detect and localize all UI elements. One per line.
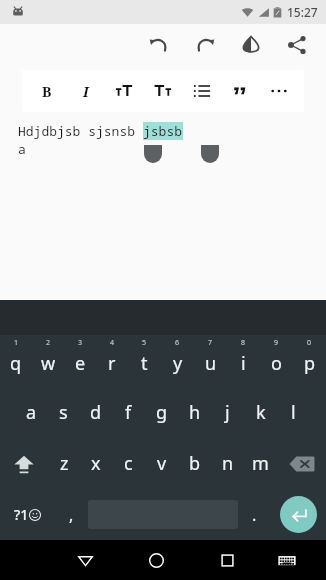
button[interactable]: . bbox=[238, 489, 271, 540]
button[interactable]: I bbox=[69, 70, 103, 112]
button[interactable]: a bbox=[15, 387, 47, 438]
button[interactable]: b bbox=[178, 438, 211, 489]
staticText: 7 bbox=[208, 338, 213, 348]
staticText: b bbox=[189, 451, 201, 476]
staticText: 8 bbox=[241, 338, 246, 348]
button[interactable]: l bbox=[277, 387, 310, 438]
staticText: o bbox=[271, 351, 282, 376]
staticText: 6 bbox=[175, 338, 180, 348]
staticText: q bbox=[10, 351, 22, 376]
staticText: B bbox=[42, 82, 52, 101]
button[interactable]: Symbols bbox=[0, 489, 55, 540]
button[interactable]: 6 bbox=[161, 335, 194, 387]
button[interactable]: Quote bbox=[223, 70, 257, 112]
staticText: n bbox=[222, 451, 234, 476]
button[interactable]: x bbox=[80, 438, 112, 489]
staticText: , bbox=[69, 504, 74, 526]
staticText: 9 bbox=[274, 338, 279, 348]
button[interactable]: d bbox=[79, 387, 112, 438]
staticText: f bbox=[125, 400, 132, 425]
staticText: x bbox=[91, 451, 101, 476]
button[interactable]: Redo bbox=[182, 24, 228, 66]
button[interactable]: List bbox=[185, 70, 219, 112]
staticText: t bbox=[141, 351, 148, 376]
staticText: 4 bbox=[110, 338, 115, 348]
staticText: p bbox=[304, 351, 316, 376]
staticText: a bbox=[18, 140, 26, 158]
button[interactable]: j bbox=[211, 387, 244, 438]
button[interactable]: Undo bbox=[136, 24, 182, 66]
button[interactable]: 0 bbox=[293, 335, 326, 387]
staticText: e bbox=[75, 351, 86, 376]
button[interactable]: Home bbox=[134, 540, 178, 580]
staticText: k bbox=[256, 400, 266, 425]
staticText: 0 bbox=[307, 338, 312, 348]
staticText: l bbox=[291, 400, 296, 425]
button[interactable]: 4 bbox=[96, 335, 128, 387]
staticText: h bbox=[189, 400, 201, 425]
staticText: g bbox=[156, 400, 168, 425]
button[interactable]: 2 bbox=[32, 335, 64, 387]
staticText: 3 bbox=[78, 338, 83, 348]
button[interactable]: 9 bbox=[260, 335, 293, 387]
staticText: ?1 bbox=[14, 505, 29, 524]
staticText: r bbox=[108, 351, 116, 376]
staticText: c bbox=[124, 451, 133, 476]
staticText: 15:27 bbox=[287, 4, 318, 20]
button[interactable]: Back bbox=[63, 540, 107, 580]
button[interactable]: B bbox=[30, 70, 64, 112]
button[interactable]: z bbox=[48, 438, 80, 489]
button[interactable]: m bbox=[244, 438, 277, 489]
staticText: z bbox=[60, 451, 69, 476]
button[interactable]: s bbox=[47, 387, 79, 438]
button[interactable]: Switch keyboard bbox=[265, 540, 309, 580]
staticText: m bbox=[252, 451, 269, 476]
button[interactable]: More options bbox=[262, 70, 296, 112]
staticText: u bbox=[205, 351, 217, 376]
button[interactable]: Enter bbox=[271, 489, 326, 540]
button[interactable]: Recent apps bbox=[205, 540, 249, 580]
button[interactable]: n bbox=[211, 438, 244, 489]
staticText: s bbox=[59, 400, 68, 425]
button[interactable]: h bbox=[178, 387, 211, 438]
button[interactable]: 5 bbox=[128, 335, 161, 387]
button[interactable]: g bbox=[145, 387, 178, 438]
staticText: . bbox=[252, 504, 257, 526]
button[interactable]: Share bbox=[274, 24, 320, 66]
button[interactable]: Backspace bbox=[277, 438, 326, 489]
button[interactable]: 7 bbox=[194, 335, 227, 387]
staticText: i bbox=[241, 351, 246, 376]
button[interactable]: c bbox=[112, 438, 145, 489]
staticText: 5 bbox=[142, 338, 147, 348]
staticText: j bbox=[225, 400, 230, 425]
button[interactable]: 8 bbox=[227, 335, 260, 387]
button[interactable]: , bbox=[55, 489, 88, 540]
staticText: 2 bbox=[46, 338, 51, 348]
staticText: Hdjdbjsb sjsnsb bbox=[18, 122, 143, 140]
button[interactable]: 1 bbox=[0, 335, 32, 387]
button[interactable]: Decrease text size bbox=[107, 70, 141, 112]
button[interactable]: Shift bbox=[0, 438, 48, 489]
staticText: 1 bbox=[14, 338, 19, 348]
staticText: I bbox=[83, 82, 89, 101]
staticText: v bbox=[157, 451, 167, 476]
button[interactable]: k bbox=[244, 387, 277, 438]
button[interactable]: Theme bbox=[228, 24, 274, 66]
button[interactable]: 3 bbox=[64, 335, 96, 387]
staticText: w bbox=[41, 351, 56, 376]
staticText: jsbsb bbox=[143, 122, 183, 140]
button[interactable]: v bbox=[145, 438, 178, 489]
button[interactable]: f bbox=[112, 387, 145, 438]
staticText: y bbox=[173, 351, 183, 376]
staticText: d bbox=[90, 400, 102, 425]
staticText: a bbox=[26, 400, 37, 425]
button[interactable]: Increase text size bbox=[146, 70, 180, 112]
